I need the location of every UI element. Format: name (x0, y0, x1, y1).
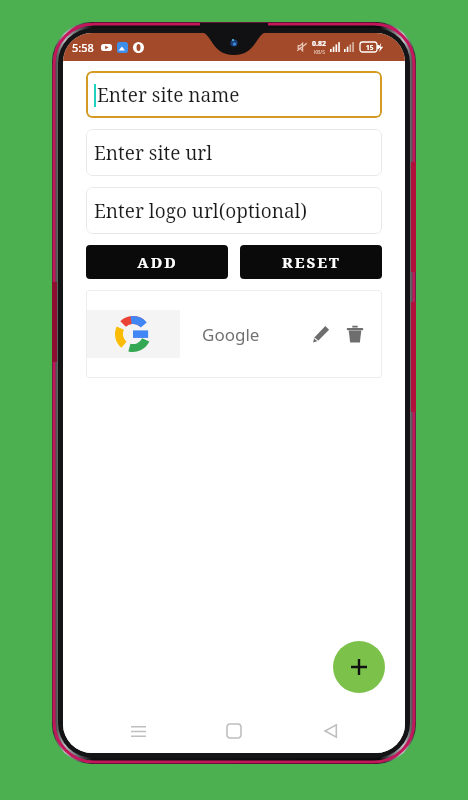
button[interactable]: Home (212, 709, 256, 753)
button[interactable]: Google (86, 290, 382, 378)
staticText: 15 (366, 43, 374, 52)
button[interactable]: Add site (333, 641, 385, 693)
staticText: Enter logo url(optional) (94, 198, 308, 224)
button[interactable]: Edit (306, 319, 336, 349)
button[interactable]: Enter site name (86, 71, 382, 118)
staticText: 5:58 (72, 40, 94, 55)
staticText: RESET (282, 252, 341, 272)
staticText: Enter site url (94, 140, 213, 166)
staticText: KB/S (314, 49, 325, 56)
button[interactable]: Back (309, 709, 353, 753)
button[interactable]: Enter site url (86, 129, 382, 176)
button[interactable]: Enter logo url(optional) (86, 187, 382, 234)
staticText: Enter site name (97, 82, 240, 108)
button[interactable]: Delete (340, 319, 370, 349)
button[interactable]: RESET (240, 245, 382, 279)
staticText: ADD (137, 252, 178, 272)
staticText: Google (202, 323, 260, 346)
button[interactable]: Recents (116, 709, 160, 753)
button[interactable]: ADD (86, 245, 228, 279)
staticText: 0.82 (312, 39, 326, 49)
